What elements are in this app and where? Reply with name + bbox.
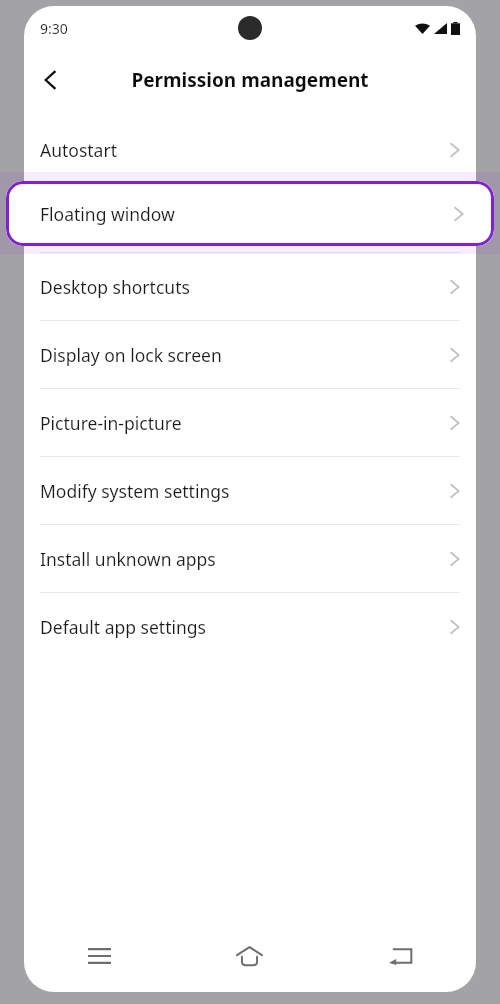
button[interactable]: Back bbox=[325, 928, 476, 984]
button[interactable]: Home bbox=[174, 928, 325, 984]
staticText: Picture-in-picture bbox=[40, 411, 182, 435]
staticText: Floating window bbox=[40, 202, 175, 226]
button[interactable]: Default app settings bbox=[24, 593, 476, 660]
staticText: Display on lock screen bbox=[40, 343, 222, 367]
button[interactable] bbox=[24, 184, 476, 252]
button[interactable]: Display on lock screen bbox=[24, 321, 476, 388]
button[interactable]: Back bbox=[24, 53, 78, 107]
button[interactable]: Floating window bbox=[6, 181, 494, 246]
staticText: 9:30 bbox=[40, 19, 68, 38]
button[interactable]: Autostart bbox=[24, 116, 476, 184]
staticText: Install unknown apps bbox=[40, 547, 216, 571]
staticText: Default app settings bbox=[40, 615, 206, 639]
staticText: Desktop shortcuts bbox=[40, 275, 190, 299]
button[interactable]: Install unknown apps bbox=[24, 525, 476, 592]
button[interactable]: Desktop shortcuts bbox=[24, 253, 476, 320]
button[interactable]: Modify system settings bbox=[24, 457, 476, 524]
staticText: Permission management bbox=[131, 67, 369, 93]
button[interactable]: Picture-in-picture bbox=[24, 389, 476, 456]
staticText: Autostart bbox=[40, 138, 117, 162]
button[interactable]: Recent apps bbox=[24, 928, 174, 984]
staticText: Modify system settings bbox=[40, 479, 230, 503]
